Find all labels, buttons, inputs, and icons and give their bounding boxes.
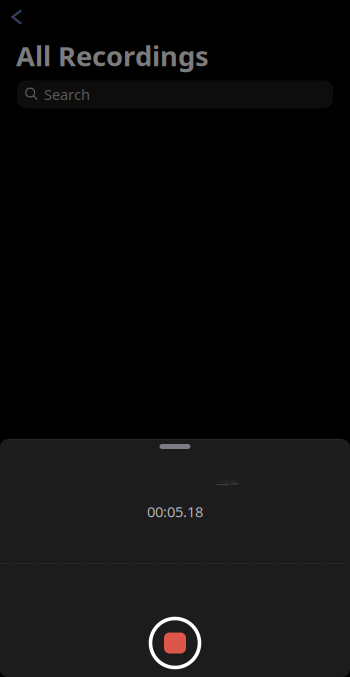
- staticText: Search: [44, 85, 90, 104]
- button[interactable]: Search: [17, 80, 333, 108]
- staticText: All Recordings: [16, 38, 209, 73]
- button[interactable]: Stop recording: [142, 610, 208, 676]
- staticText: 00:05.18: [147, 502, 203, 521]
- button[interactable]: Back: [0, 0, 46, 35]
